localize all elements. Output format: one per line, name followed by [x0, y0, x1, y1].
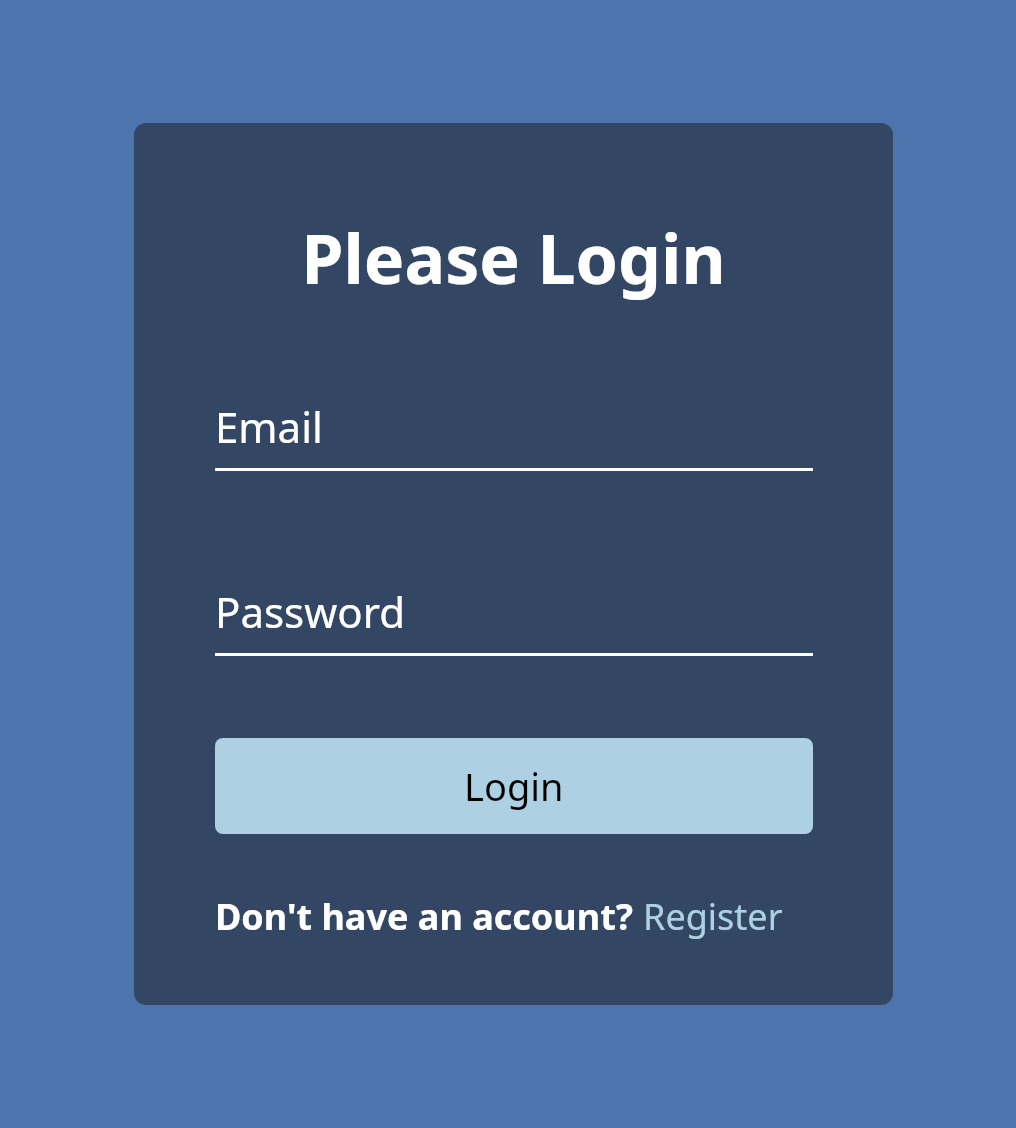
button[interactable]: Register	[643, 892, 783, 941]
staticText: Login	[464, 760, 564, 812]
staticText: Password	[215, 583, 405, 640]
staticText: Register	[643, 892, 783, 941]
staticText: Don't have an account?	[215, 892, 643, 941]
button[interactable]: Password	[215, 578, 813, 644]
button[interactable]: Login	[215, 738, 813, 834]
staticText: Please Login	[134, 211, 893, 304]
button[interactable]: Email	[215, 393, 813, 459]
staticText: Email	[215, 398, 323, 455]
